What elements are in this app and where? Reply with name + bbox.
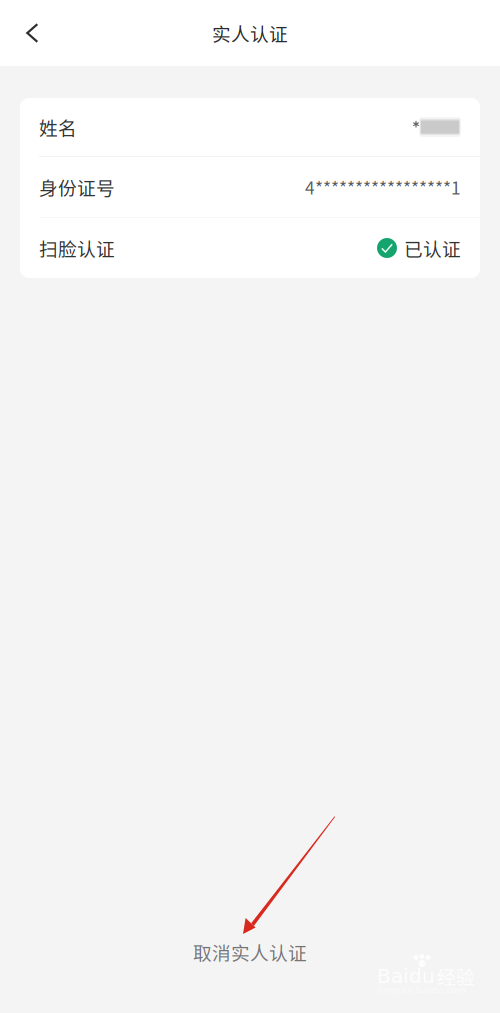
staticText: 实人认证 [212, 19, 288, 46]
staticText: 取消实人认证 [193, 938, 307, 965]
staticText: 4*****************1 [305, 174, 461, 200]
staticText: 扫脸认证 [39, 234, 115, 261]
staticText: 已认证 [404, 234, 461, 261]
staticText: 姓名 [39, 113, 77, 140]
button[interactable]: Back [0, 0, 54, 66]
staticText: Baidu [377, 964, 435, 988]
staticText: 身份证号 [39, 173, 115, 200]
button[interactable]: 取消实人认证 [0, 936, 500, 968]
